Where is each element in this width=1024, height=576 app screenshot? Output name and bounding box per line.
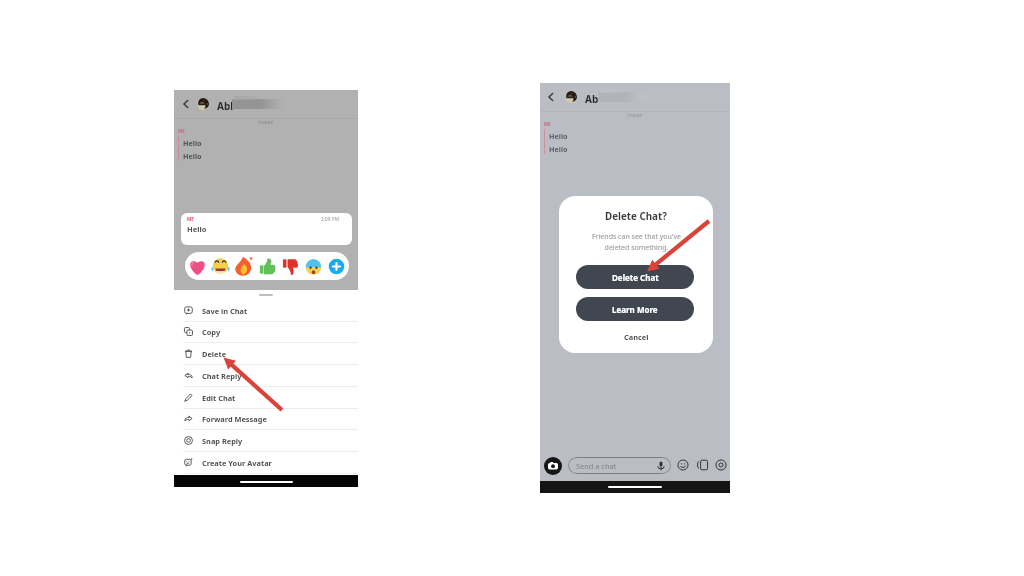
staticText: Ab — [585, 92, 599, 106]
staticText: Hello — [183, 138, 202, 148]
button[interactable]: Create Your Avatar — [174, 452, 358, 473]
staticText: Hello — [187, 224, 207, 234]
staticText: ME — [178, 128, 185, 134]
button[interactable]: Snap — [715, 459, 727, 471]
button[interactable]: Fire reaction — [233, 256, 254, 277]
button[interactable]: Back — [180, 98, 192, 110]
button[interactable]: Stickers — [697, 459, 709, 471]
button[interactable]: Back — [545, 91, 557, 103]
staticText: Send a chat — [576, 461, 617, 471]
button[interactable]: Delete Chat — [576, 265, 694, 289]
button[interactable]: Snap Reply — [174, 430, 358, 451]
staticText: Hello — [549, 144, 568, 154]
staticText: Delete Chat — [612, 272, 659, 283]
button[interactable]: Delete — [174, 343, 358, 364]
button[interactable]: Copy — [174, 321, 358, 342]
button[interactable]: Thumbs down reaction — [280, 256, 301, 277]
button[interactable]: Thumbs up reaction — [257, 256, 278, 277]
button[interactable]: Shocked reaction — [303, 256, 324, 277]
staticText: Forward Message — [202, 414, 267, 424]
staticText: Learn More — [612, 304, 658, 315]
button[interactable]: Forward Message — [174, 408, 358, 429]
staticText: Delete Chat? — [605, 210, 667, 222]
button[interactable]: More reactions — [326, 256, 347, 277]
button[interactable]: Save in Chat — [174, 300, 358, 321]
staticText: TODAY — [627, 113, 643, 119]
staticText: Hello — [549, 131, 568, 141]
staticText: Save in Chat — [202, 306, 248, 316]
staticText: ME — [544, 121, 551, 127]
staticText: 2:09 PM — [321, 216, 340, 223]
button[interactable]: Laughing reaction — [210, 256, 231, 277]
staticText: Snap Reply — [202, 436, 243, 446]
button[interactable]: Chat Reply — [174, 365, 358, 386]
button[interactable]: Edit Chat — [174, 387, 358, 408]
staticText: Abl — [217, 99, 234, 113]
staticText: Delete — [202, 349, 227, 359]
staticText: ME — [187, 216, 194, 222]
staticText: Friends can see that you've deleted some… — [592, 232, 681, 252]
button[interactable]: Camera — [544, 457, 562, 475]
staticText: Copy — [202, 327, 221, 337]
button[interactable]: Heart reaction — [187, 256, 208, 277]
staticText: TODAY — [258, 120, 274, 126]
staticText: Hello — [183, 151, 202, 161]
button[interactable]: Cancel — [559, 330, 713, 344]
button[interactable]: Learn More — [576, 297, 694, 321]
staticText: Chat Reply — [202, 371, 242, 381]
button[interactable]: Send a chat — [568, 457, 671, 474]
button[interactable]: ME — [181, 213, 352, 245]
staticText: Create Your Avatar — [202, 458, 272, 468]
button[interactable]: Emoji — [677, 459, 689, 471]
staticText: Cancel — [624, 332, 649, 342]
staticText: Edit Chat — [202, 393, 236, 403]
